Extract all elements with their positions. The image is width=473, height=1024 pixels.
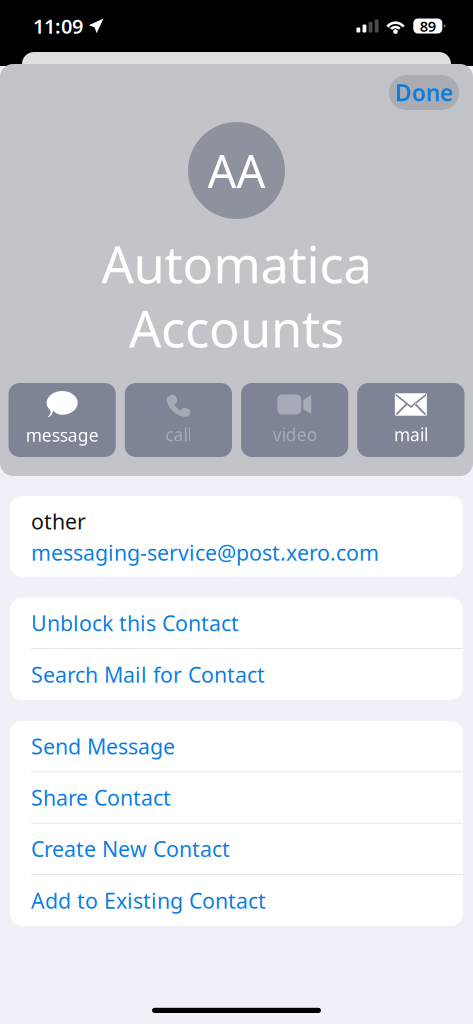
- button[interactable]: Share Contact: [10, 772, 463, 824]
- button[interactable]: Send Message: [10, 721, 463, 772]
- button[interactable]: Search Mail for Contact: [10, 649, 463, 700]
- staticText: AA: [207, 140, 265, 201]
- button[interactable]: mail: [357, 383, 464, 457]
- staticText: call: [165, 423, 191, 446]
- staticText: Unblock this Contact: [31, 609, 239, 637]
- staticText: 11:09: [33, 13, 83, 39]
- button[interactable]: Add to Existing Contact: [10, 875, 463, 926]
- staticText: 89: [420, 16, 436, 36]
- staticText: Add to Existing Contact: [31, 886, 266, 914]
- staticText: Share Contact: [31, 783, 171, 812]
- button[interactable]: other: [10, 496, 463, 577]
- staticText: messaging-service@post.xero.com: [31, 538, 379, 567]
- staticText: message: [26, 423, 99, 446]
- staticText: other: [31, 507, 86, 535]
- button[interactable]: video: [241, 383, 348, 457]
- button[interactable]: Done: [389, 75, 459, 110]
- staticText: Search Mail for Contact: [31, 660, 265, 689]
- staticText: mail: [394, 423, 428, 446]
- button[interactable]: Create New Contact: [10, 824, 463, 875]
- button[interactable]: message: [8, 383, 116, 457]
- staticText: Create New Contact: [31, 835, 230, 863]
- staticText: Done: [395, 77, 453, 107]
- staticText: Accounts: [129, 294, 344, 362]
- staticText: Send Message: [31, 732, 175, 760]
- staticText: Automatica: [101, 230, 371, 297]
- button[interactable]: call: [125, 383, 232, 457]
- staticText: video: [273, 423, 317, 446]
- button[interactable]: Unblock this Contact: [10, 598, 463, 649]
